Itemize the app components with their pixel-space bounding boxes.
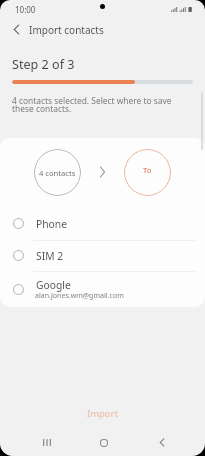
staticText: SIM 2 xyxy=(36,249,64,263)
staticText: 4 contacts xyxy=(39,168,76,178)
staticText: 4 contacts selected. Select where to sav… xyxy=(12,95,172,115)
staticText: Phone xyxy=(36,217,67,231)
button[interactable]: Recent apps xyxy=(34,430,59,455)
button[interactable]: Google xyxy=(0,274,205,307)
staticText: Import xyxy=(87,407,119,420)
staticText: Import contacts xyxy=(29,23,104,37)
button[interactable]: Phone xyxy=(0,208,205,238)
staticText: Step 2 of 3 xyxy=(12,56,75,73)
button[interactable]: 4 contacts xyxy=(34,149,81,196)
staticText: To xyxy=(143,165,152,175)
button[interactable]: Navigate up xyxy=(4,17,28,41)
staticText: Google xyxy=(36,278,71,292)
button[interactable]: SIM 2 xyxy=(0,240,205,270)
button[interactable]: Back xyxy=(149,430,174,455)
button[interactable]: To xyxy=(124,149,171,196)
button[interactable]: Home xyxy=(91,430,116,455)
staticText: 10:00 xyxy=(15,4,36,15)
staticText: alan.jones.wm@gmail.com xyxy=(35,290,124,300)
button[interactable]: Import xyxy=(0,403,205,423)
